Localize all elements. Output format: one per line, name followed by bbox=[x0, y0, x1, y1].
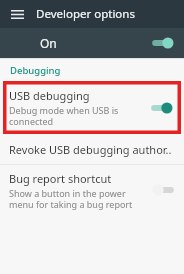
staticText: Show a button in the power menu for taki… bbox=[9, 187, 148, 210]
button[interactable]: Toggle, on bbox=[150, 36, 174, 50]
button[interactable]: Toggle, on bbox=[149, 101, 173, 115]
staticText: Debugging bbox=[10, 64, 61, 77]
staticText: Debug mode when USB is connected bbox=[9, 104, 145, 127]
button[interactable]: Bug report shortcut bbox=[0, 165, 184, 274]
button[interactable]: USB debugging bbox=[3, 81, 181, 134]
staticText: Bug report shortcut bbox=[9, 171, 112, 186]
staticText: Revoke USB debugging author.. bbox=[9, 142, 172, 157]
button[interactable]: Revoke USB debugging author.. bbox=[0, 134, 184, 164]
staticText: Developer options bbox=[36, 6, 135, 22]
button[interactable]: On bbox=[0, 28, 184, 58]
staticText: USB debugging bbox=[9, 88, 90, 103]
button[interactable]: Open navigation menu bbox=[6, 3, 28, 25]
button[interactable]: Toggle, off bbox=[152, 183, 176, 197]
staticText: On bbox=[40, 35, 57, 51]
